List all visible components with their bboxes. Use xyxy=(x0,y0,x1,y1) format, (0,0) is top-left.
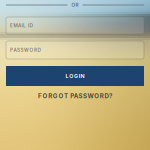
button[interactable]: FORGOT PASSWORD? xyxy=(6,92,144,100)
staticText: FORGOT PASSWORD? xyxy=(38,92,112,100)
staticText: EMAIL ID xyxy=(10,23,32,28)
button[interactable]: PASSWORD xyxy=(6,41,144,59)
staticText: PASSWORD xyxy=(10,47,40,53)
staticText: LOGIN xyxy=(65,73,85,79)
staticText: OR xyxy=(71,2,78,8)
button[interactable]: EMAIL ID xyxy=(6,17,144,34)
button[interactable]: LOGIN xyxy=(6,66,144,86)
